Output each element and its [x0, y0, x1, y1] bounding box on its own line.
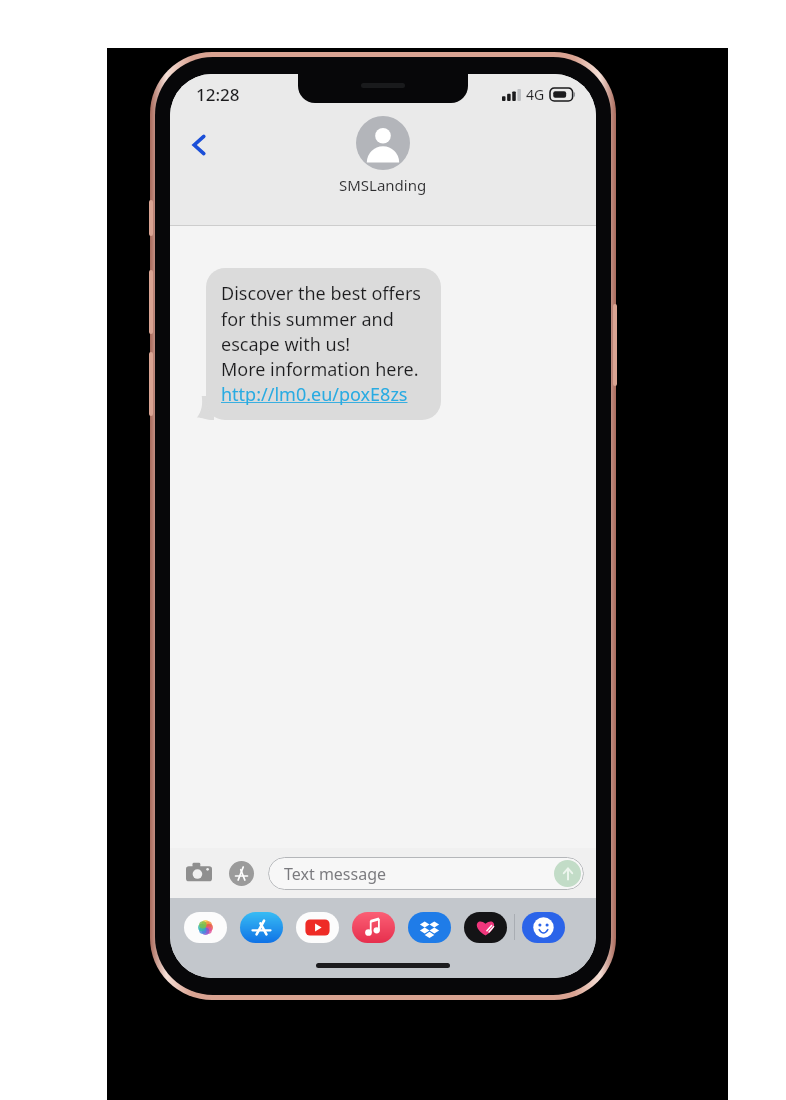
- button[interactable]: Apple Music: [352, 912, 395, 943]
- button[interactable]: Dropbox: [408, 912, 451, 943]
- button[interactable]: App Store: [224, 856, 258, 890]
- button[interactable]: Text message: [268, 857, 584, 890]
- button[interactable]: SMSLanding: [339, 116, 427, 195]
- staticText: 4G: [526, 85, 545, 104]
- button[interactable]: Back: [178, 124, 220, 166]
- button[interactable]: App Store: [240, 912, 283, 943]
- button[interactable]: Discover the best offers for this summer…: [206, 268, 441, 420]
- staticText: SMSLanding: [339, 175, 427, 195]
- button[interactable]: Photos: [184, 912, 227, 943]
- button[interactable]: YouTube: [296, 912, 339, 943]
- button[interactable]: Memoji: [522, 912, 565, 943]
- staticText: Text message: [284, 863, 387, 885]
- button[interactable]: Camera: [182, 856, 216, 890]
- staticText: 12:28: [196, 83, 240, 106]
- staticText: Discover the best offers for this summer…: [221, 281, 421, 406]
- button[interactable]: Send: [554, 860, 581, 887]
- button[interactable]: Health: [464, 912, 507, 943]
